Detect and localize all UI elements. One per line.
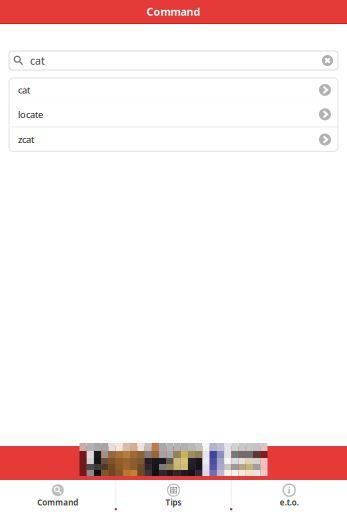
button[interactable]: cat	[9, 78, 338, 102]
staticText: cat	[18, 84, 30, 96]
button[interactable]: Command	[0, 480, 116, 512]
button[interactable]: cat	[9, 51, 338, 70]
staticText: i	[288, 484, 291, 496]
staticText: locate	[18, 108, 43, 120]
button[interactable]: locate	[9, 102, 338, 126]
staticText: cat	[30, 53, 45, 68]
staticText: e.t.o.	[280, 497, 299, 508]
staticText: Tips	[165, 497, 181, 508]
staticText: Command	[37, 497, 78, 508]
staticText: Command	[146, 4, 200, 19]
button[interactable]: i	[231, 480, 347, 512]
button[interactable]: zcat	[9, 128, 338, 151]
staticText: zcat	[18, 133, 34, 146]
button[interactable]: Tips	[116, 480, 231, 512]
